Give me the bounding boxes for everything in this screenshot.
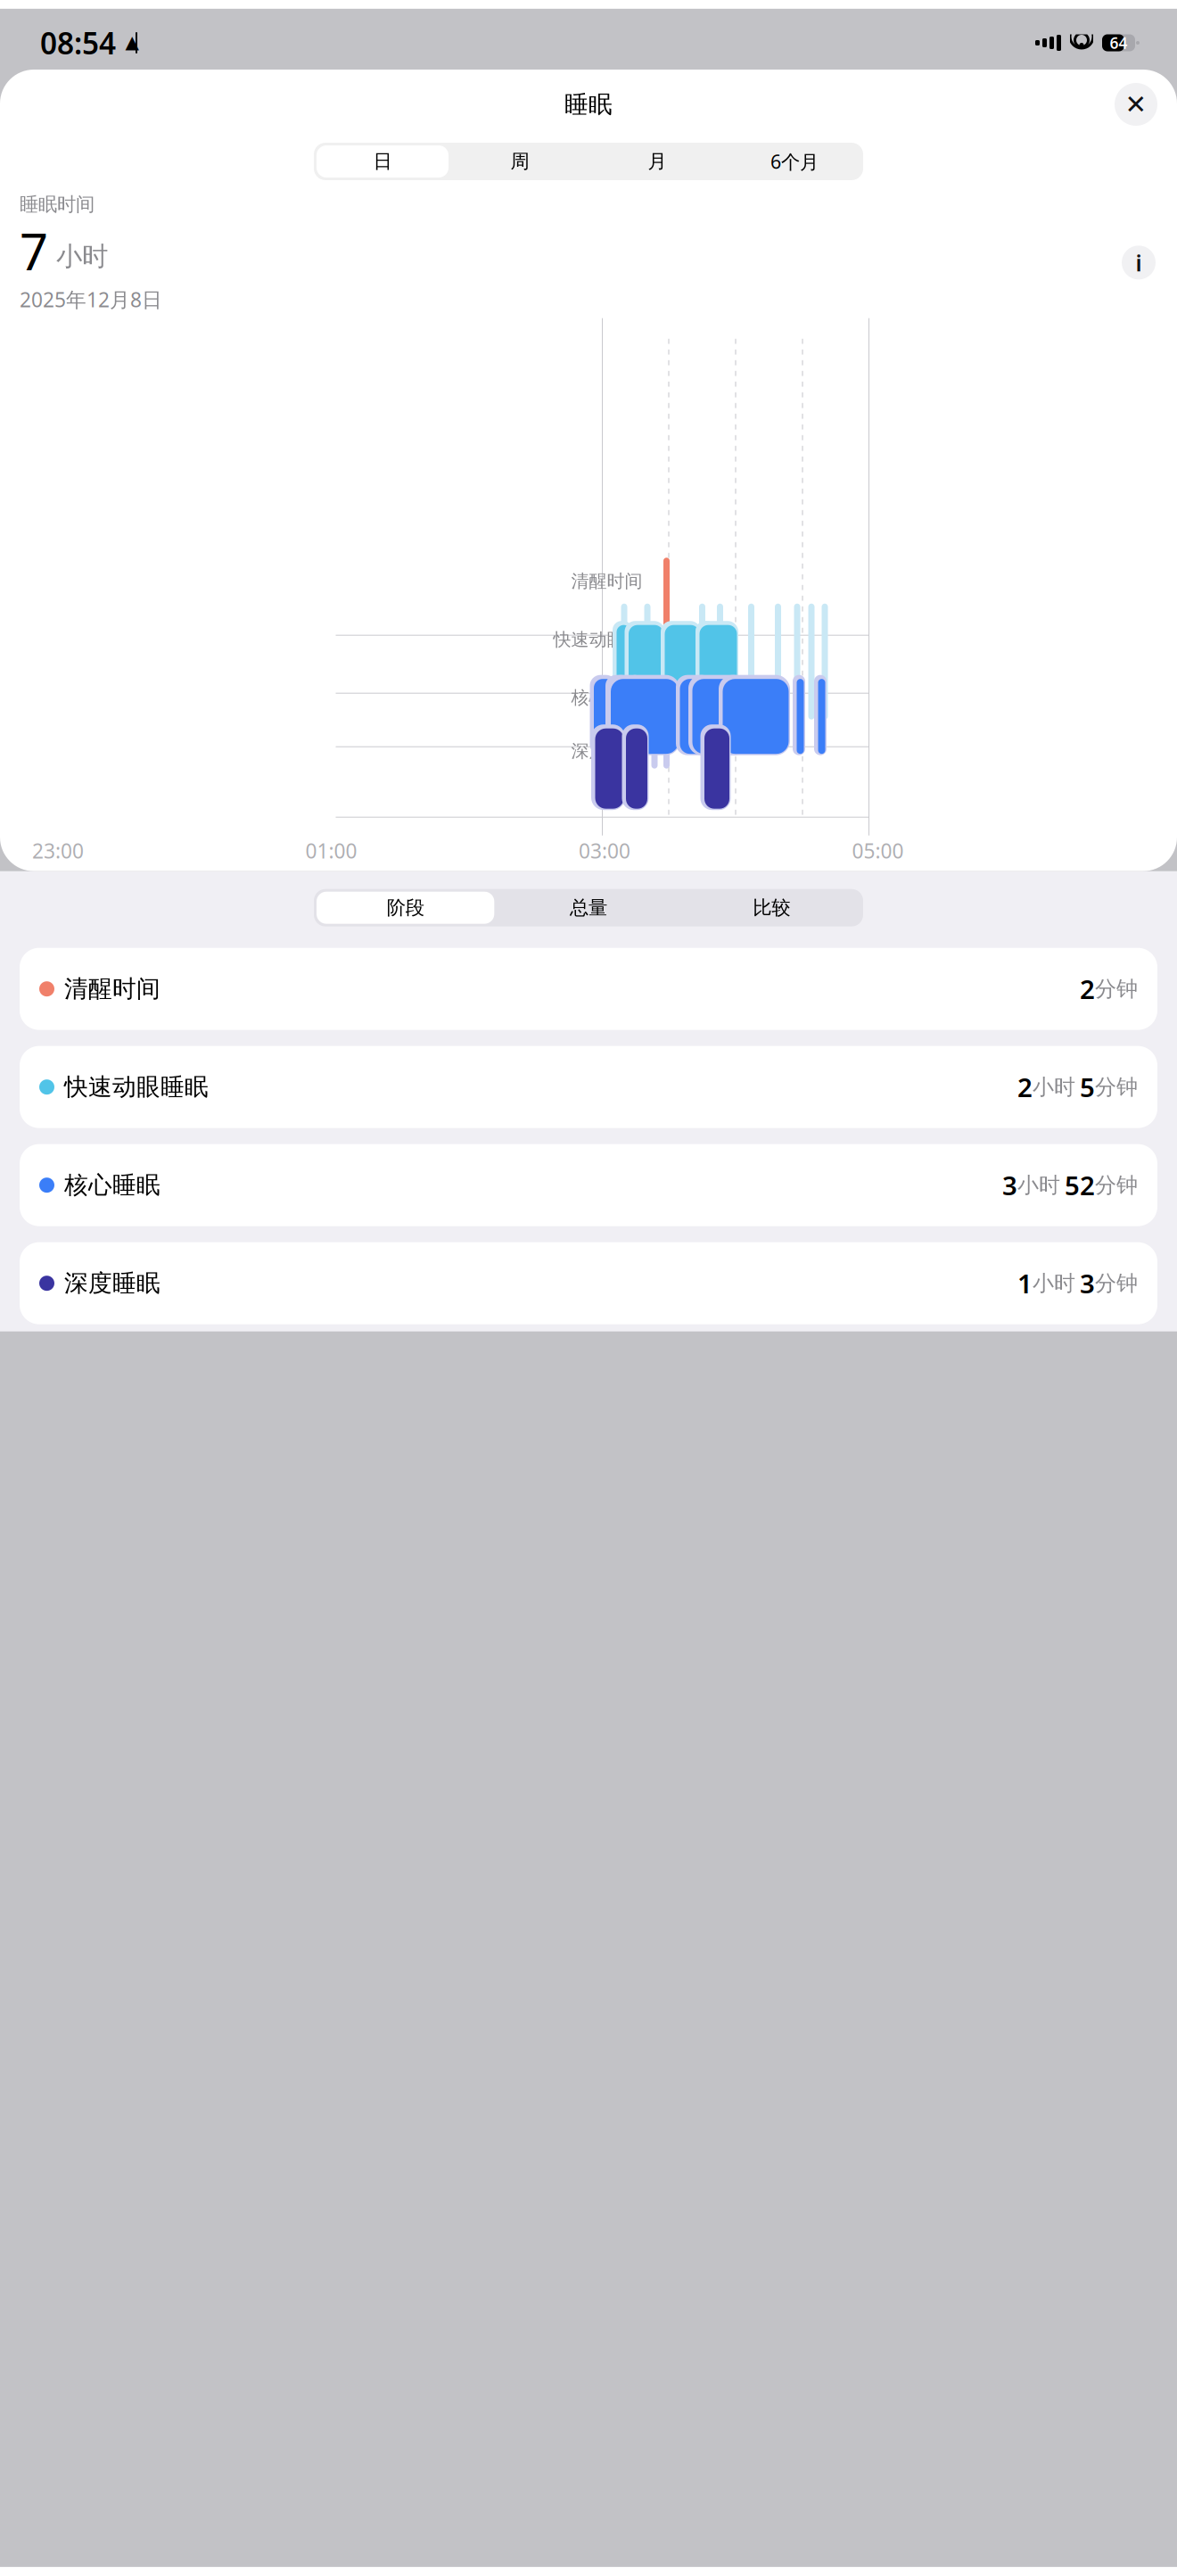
staticText: 比较 [753,896,790,919]
staticText: ▲ [125,32,139,52]
staticText: 03:00 [579,837,630,864]
button[interactable]: 日 [314,143,451,180]
button[interactable]: 关闭 [1115,83,1157,126]
button[interactable]: 月 [588,143,726,180]
button[interactable]: 清醒时间 [20,948,1157,1030]
staticText: 2 [1017,1070,1033,1104]
staticText: 1 [1017,1266,1033,1301]
staticText: 08:54 [40,23,116,63]
staticText: 清醒时间 [571,570,642,592]
staticText: 3 [1080,1266,1095,1301]
staticText: 05:00 [852,837,904,864]
staticText: 分钟 [1095,1172,1138,1198]
staticText: 深度睡眠 [571,740,642,762]
button[interactable]: 总量 [497,889,680,926]
staticText: 小时 [1033,1270,1075,1296]
staticText: 睡眠时间 [20,193,95,216]
button[interactable]: 深度睡眠 [20,1242,1157,1324]
staticText: 快速动眼睡眠 [64,1072,209,1102]
staticText: 深度睡眠 [64,1269,160,1298]
staticText: 7 [20,218,48,284]
staticText: 月 [648,150,667,173]
staticText: 快速动眼睡眠 [553,629,660,651]
staticText: 核心睡眠 [571,687,642,709]
staticText: 小时 [1017,1172,1060,1198]
button[interactable]: 信息 [1122,246,1156,279]
button[interactable]: 快速动眼睡眠 [20,1046,1157,1128]
staticText: 周 [510,150,529,173]
staticText: 清醒时间 [64,974,160,1004]
staticText: 小时 [1033,1074,1075,1100]
button[interactable]: 6个月 [726,143,863,180]
button[interactable]: 阶段 [314,889,497,926]
staticText: ✕ [1125,90,1147,119]
staticText: 日 [373,150,392,173]
button[interactable]: 比较 [680,889,863,926]
staticText: 64 [1110,33,1128,53]
staticText: 3 [1002,1168,1017,1203]
staticText: 6个月 [770,149,819,174]
button[interactable]: 周 [451,143,588,180]
staticText: 2025年12月8日 [20,286,162,313]
staticText: 52 [1065,1168,1095,1203]
staticText: 分钟 [1095,976,1138,1002]
staticText: 小时 [48,240,108,272]
staticText: 阶段 [387,896,424,919]
staticText: 核心睡眠 [64,1171,160,1200]
button[interactable]: 核心睡眠 [20,1144,1157,1226]
staticText: 睡眠 [564,90,613,119]
staticText: 2 [1080,972,1095,1006]
staticText: 5 [1080,1070,1095,1104]
staticText: 23:00 [32,837,84,864]
staticText: 分钟 [1095,1270,1138,1296]
staticText: i [1136,248,1142,277]
staticText: 总量 [570,896,607,919]
staticText: 01:00 [305,837,357,864]
staticText: 分钟 [1095,1074,1138,1100]
